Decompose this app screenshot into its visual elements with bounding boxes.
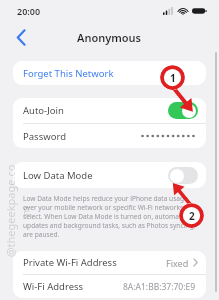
staticText: Password bbox=[23, 130, 66, 143]
button[interactable]: Wi-Fi Address bbox=[13, 275, 206, 298]
button[interactable]: Low Data Mode bbox=[13, 162, 206, 188]
button[interactable]: Auto-Join toggle bbox=[168, 102, 198, 119]
staticText: Low Data Mode helps reduce your iPhone d… bbox=[23, 194, 203, 239]
button[interactable]: Private Wi-Fi Address bbox=[13, 251, 206, 274]
staticText: Private Wi-Fi Address bbox=[23, 256, 117, 269]
staticText: Low Data Mode bbox=[23, 169, 93, 182]
staticText: Auto-Join bbox=[23, 104, 64, 117]
staticText: @thegeekpage.com bbox=[3, 161, 33, 261]
staticText: Wi-Fi Address bbox=[23, 280, 84, 293]
staticText: Fixed bbox=[166, 257, 189, 269]
button[interactable]: Auto-Join bbox=[13, 98, 206, 123]
staticText: Forget This Network bbox=[23, 67, 114, 80]
button[interactable]: Forget This Network bbox=[13, 61, 206, 85]
button[interactable]: Low Data Mode toggle bbox=[168, 167, 198, 184]
staticText: 2 bbox=[189, 209, 195, 223]
staticText: Anonymous bbox=[77, 30, 142, 45]
button[interactable]: Back bbox=[8, 24, 34, 50]
button[interactable]: Password bbox=[13, 124, 206, 148]
staticText: 1 bbox=[170, 71, 176, 85]
staticText: 8A:A1:BB:37:70:E9 bbox=[123, 281, 196, 293]
staticText: 20:00 bbox=[17, 5, 41, 17]
